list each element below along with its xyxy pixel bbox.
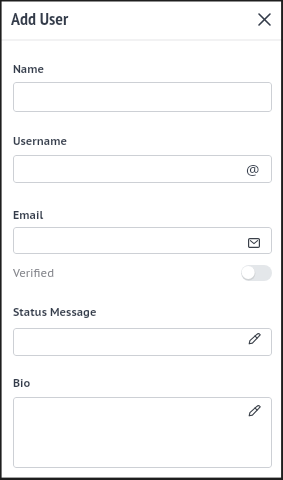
button[interactable] — [13, 328, 272, 356]
button[interactable] — [13, 227, 272, 254]
staticText: @ — [246, 159, 260, 179]
staticText: Username — [13, 134, 68, 148]
button[interactable] — [13, 82, 272, 112]
staticText: Status Message — [13, 305, 97, 319]
staticText: Add User — [11, 7, 69, 30]
staticText: Name — [13, 62, 45, 76]
button[interactable]: Verified — [13, 265, 272, 281]
staticText: Verified — [13, 266, 55, 280]
staticText: Email — [13, 208, 44, 222]
button[interactable] — [13, 397, 272, 468]
button[interactable]: @ — [13, 155, 272, 183]
staticText: Bio — [13, 376, 31, 390]
button[interactable] — [254, 9, 274, 29]
